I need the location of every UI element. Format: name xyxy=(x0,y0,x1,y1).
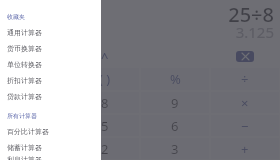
button[interactable]: Overflow xyxy=(0,46,70,67)
button[interactable]: 5 xyxy=(71,115,139,136)
button[interactable]: C xyxy=(1,68,69,90)
staticText: 25÷8 xyxy=(228,1,274,28)
staticText: ( ) xyxy=(99,70,111,88)
button[interactable]: Backspace xyxy=(210,46,280,67)
staticText: × xyxy=(241,94,249,112)
staticText: 4 xyxy=(31,117,39,135)
button[interactable]: 货币换算器 xyxy=(0,40,101,56)
button[interactable]: 3 xyxy=(141,138,209,159)
button[interactable]: 单位转换器 xyxy=(0,56,101,72)
staticText: 贷款计算器 xyxy=(7,92,42,101)
staticText: 货币换算器 xyxy=(7,44,42,53)
staticText: 5 xyxy=(101,117,109,135)
staticText: C xyxy=(31,70,40,88)
staticText: 3.125 xyxy=(235,22,274,42)
staticText: 2 xyxy=(101,140,109,158)
staticText: 1 xyxy=(31,140,39,158)
staticText: 6 xyxy=(171,117,179,135)
staticText: − xyxy=(241,117,249,135)
staticText: 7 xyxy=(31,94,39,112)
staticText: + xyxy=(241,140,249,158)
staticText: 利息计算器 xyxy=(7,155,42,160)
button[interactable]: 1 xyxy=(1,138,69,159)
button[interactable]: 6 xyxy=(141,115,209,136)
button[interactable]: 4 xyxy=(1,115,69,136)
button[interactable]: 储蓄计算器 xyxy=(0,139,101,155)
button[interactable]: 9 xyxy=(141,92,209,113)
staticText: 通用计算器 xyxy=(7,28,42,37)
button[interactable]: 2 xyxy=(71,138,139,159)
staticText: % xyxy=(170,70,181,88)
button[interactable]: ( ) xyxy=(71,68,139,90)
staticText: 8 xyxy=(101,94,109,112)
button[interactable]: 8 xyxy=(71,92,139,113)
button[interactable]: 折扣计算器 xyxy=(0,72,101,88)
staticText: 所有计算器 xyxy=(7,112,37,120)
button[interactable]: 利息计算器 xyxy=(0,155,101,160)
staticText: 百分比计算器 xyxy=(7,127,49,136)
button[interactable]: 通用计算器 xyxy=(0,24,101,40)
staticText: ÷ xyxy=(241,70,249,88)
staticText: 储蓄计算器 xyxy=(7,143,42,152)
button[interactable]: % xyxy=(141,68,209,90)
button[interactable]: 百分比计算器 xyxy=(0,123,101,139)
staticText: 9 xyxy=(171,94,179,112)
button[interactable]: 7 xyxy=(1,92,69,113)
button[interactable]: Collapse xyxy=(70,46,140,67)
staticText: 单位转换器 xyxy=(7,60,42,69)
staticText: 收藏夹 xyxy=(7,13,25,21)
staticText: 折扣计算器 xyxy=(7,76,42,85)
staticText: ^ xyxy=(101,48,109,66)
staticText: 3 xyxy=(171,140,179,158)
button[interactable]: 贷款计算器 xyxy=(0,88,101,104)
